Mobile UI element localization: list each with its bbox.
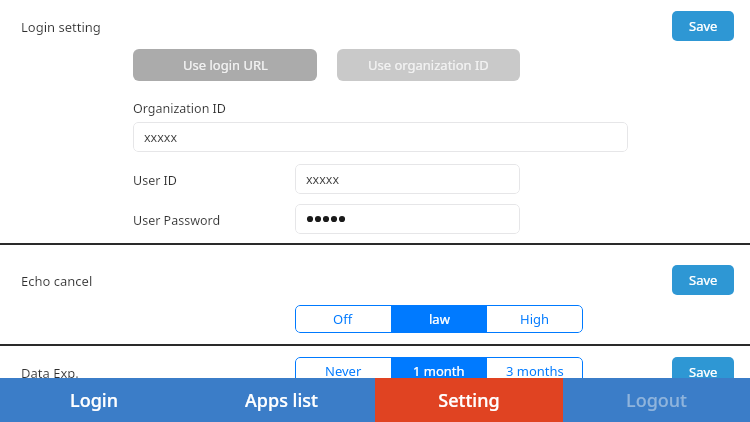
button[interactable]: Use organization ID bbox=[337, 49, 520, 81]
button[interactable] bbox=[295, 204, 520, 234]
button[interactable]: law bbox=[391, 305, 487, 333]
button[interactable]: xxxxx bbox=[295, 164, 520, 194]
button[interactable]: High bbox=[487, 305, 583, 333]
staticText: xxxxx bbox=[306, 171, 340, 188]
button[interactable]: Save bbox=[672, 357, 734, 387]
button[interactable]: Off bbox=[295, 305, 391, 333]
staticText: User Password bbox=[133, 212, 221, 229]
staticText: Apps list bbox=[245, 388, 318, 413]
staticText: 1 month bbox=[413, 362, 465, 380]
button[interactable]: Save bbox=[672, 11, 734, 41]
staticText: law bbox=[429, 310, 450, 328]
staticText: Use login URL bbox=[183, 56, 268, 74]
staticText: Use organization ID bbox=[368, 56, 489, 74]
staticText: Save bbox=[689, 363, 718, 381]
staticText: Save bbox=[689, 271, 718, 289]
button[interactable]: Logout bbox=[563, 378, 750, 422]
staticText: Organization ID bbox=[133, 100, 226, 117]
staticText: xxxxx bbox=[144, 129, 178, 146]
button[interactable]: Never bbox=[295, 357, 391, 385]
button[interactable]: Use login URL bbox=[133, 49, 317, 81]
staticText: Login bbox=[70, 388, 118, 413]
staticText: Data Exp. bbox=[21, 364, 79, 382]
staticText: Save bbox=[689, 17, 718, 35]
button[interactable]: 1 month bbox=[391, 357, 487, 385]
staticText: Login setting bbox=[21, 18, 101, 36]
staticText: Logout bbox=[626, 388, 687, 413]
staticText: Echo cancel bbox=[21, 272, 93, 290]
staticText: High bbox=[520, 310, 550, 328]
button[interactable]: Setting bbox=[375, 378, 563, 422]
button[interactable]: Save bbox=[672, 265, 734, 295]
staticText: Off bbox=[333, 310, 353, 328]
button[interactable]: 3 months bbox=[487, 357, 583, 385]
button[interactable]: Login bbox=[0, 378, 188, 422]
button[interactable]: xxxxx bbox=[133, 122, 628, 152]
staticText: 3 months bbox=[506, 362, 564, 380]
staticText: Setting bbox=[438, 388, 500, 413]
staticText: Never bbox=[325, 362, 362, 380]
staticText: User ID bbox=[133, 172, 177, 189]
button[interactable]: Apps list bbox=[188, 378, 375, 422]
